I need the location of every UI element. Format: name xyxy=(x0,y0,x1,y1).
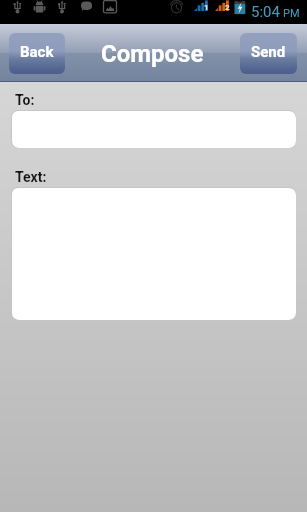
staticText: PM xyxy=(283,7,300,20)
button[interactable] xyxy=(11,110,296,148)
staticText: Compose xyxy=(101,40,204,68)
button[interactable] xyxy=(11,187,296,320)
button[interactable]: Back xyxy=(9,33,65,74)
staticText: 2 xyxy=(225,3,230,12)
staticText: To: xyxy=(15,92,35,108)
staticText: 5:04 xyxy=(251,3,280,21)
staticText: Back xyxy=(20,43,54,61)
staticText: Send xyxy=(251,43,286,61)
button[interactable]: Send xyxy=(240,33,297,74)
staticText: 1 xyxy=(204,3,209,12)
staticText: Text: xyxy=(15,169,47,185)
